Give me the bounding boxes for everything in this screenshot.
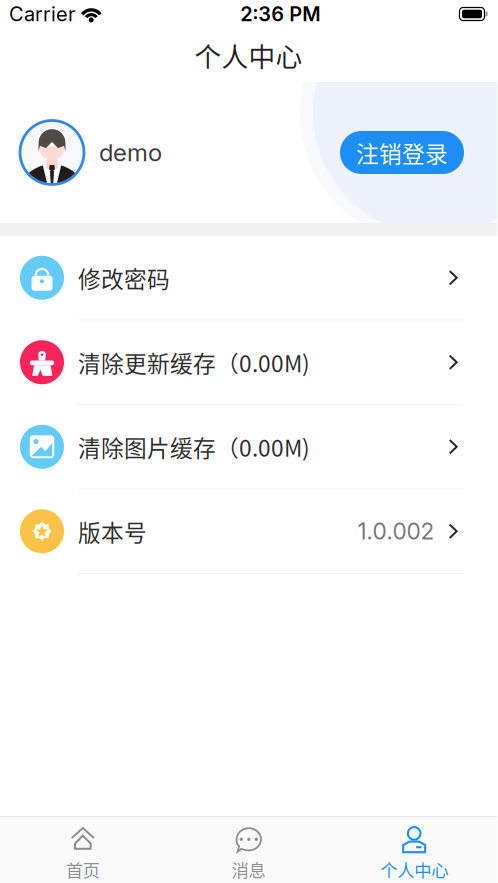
button[interactable]: 注销登录 xyxy=(340,131,464,174)
staticText: 注销登录 xyxy=(356,136,448,169)
staticText: 消息 xyxy=(231,857,265,882)
staticText: 清除图片缓存（0.00M) xyxy=(78,430,310,463)
button[interactable]: 消息 xyxy=(166,817,331,883)
staticText: 1.0.002 xyxy=(357,517,434,545)
staticText: 首页 xyxy=(66,857,100,882)
staticText: 清除更新缓存（0.00M) xyxy=(78,346,310,379)
staticText: Carrier xyxy=(9,2,75,26)
staticText: demo xyxy=(99,138,162,167)
staticText: 个人中心 xyxy=(194,36,302,74)
staticText: 2:36 PM xyxy=(240,2,320,26)
staticText: 版本号 xyxy=(78,515,147,548)
staticText: 修改密码 xyxy=(78,261,170,294)
staticText: 个人中心 xyxy=(380,857,448,882)
button[interactable]: 清除更新缓存（0.00M) xyxy=(0,320,497,405)
button[interactable]: 修改密码 xyxy=(0,236,497,320)
button[interactable]: 首页 xyxy=(0,817,166,883)
button[interactable]: 版本号 xyxy=(0,489,497,574)
button[interactable]: 个人中心 xyxy=(331,817,497,883)
button[interactable]: 清除图片缓存（0.00M) xyxy=(0,405,497,489)
